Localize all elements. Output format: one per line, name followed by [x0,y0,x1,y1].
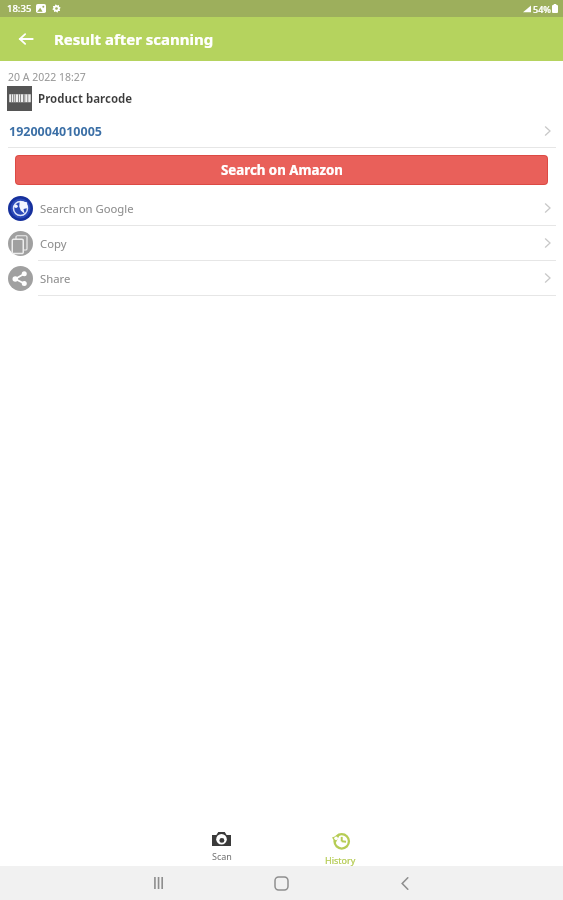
staticText: Result after scanning [54,29,214,49]
staticText: 18:35 [7,2,32,15]
button[interactable]: Share [0,261,563,296]
button[interactable]: 1920004010005 [0,120,563,142]
button[interactable]: Search on Amazon [16,156,547,184]
staticText: 54% [533,3,551,15]
staticText: Scan [212,850,232,862]
button[interactable]: Back [4,17,48,61]
staticText: Product barcode [38,91,133,107]
staticText: Search on Google [40,201,134,216]
button[interactable]: History [281,832,400,866]
staticText: Copy [40,236,67,251]
button[interactable]: Back [343,866,466,900]
staticText: 20 A 2022 18:27 [8,70,86,84]
staticText: History [325,854,356,866]
staticText: Share [40,271,71,286]
button[interactable]: Scan [162,832,281,862]
button[interactable]: Home [220,866,343,900]
staticText: 1920004010005 [9,123,102,140]
button[interactable]: Search on Google [0,191,563,226]
button[interactable]: Copy [0,226,563,261]
button[interactable]: Recent apps [97,866,220,900]
staticText: Search on Amazon [221,161,343,179]
